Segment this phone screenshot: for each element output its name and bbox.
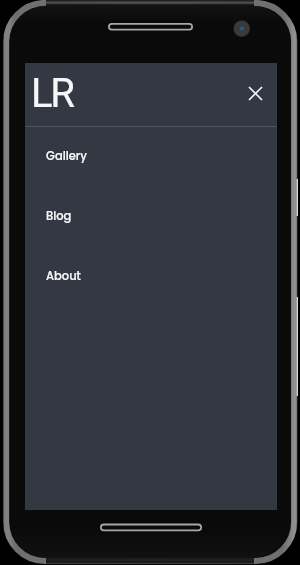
staticText: Blog [46,208,72,224]
staticText: About [46,268,81,284]
staticText: Gallery [46,148,87,164]
button[interactable]: Blog [25,187,277,247]
button[interactable]: About [25,247,277,307]
button[interactable]: Close menu [238,76,272,110]
button[interactable]: Gallery [25,127,277,187]
staticText: LR [31,70,73,117]
